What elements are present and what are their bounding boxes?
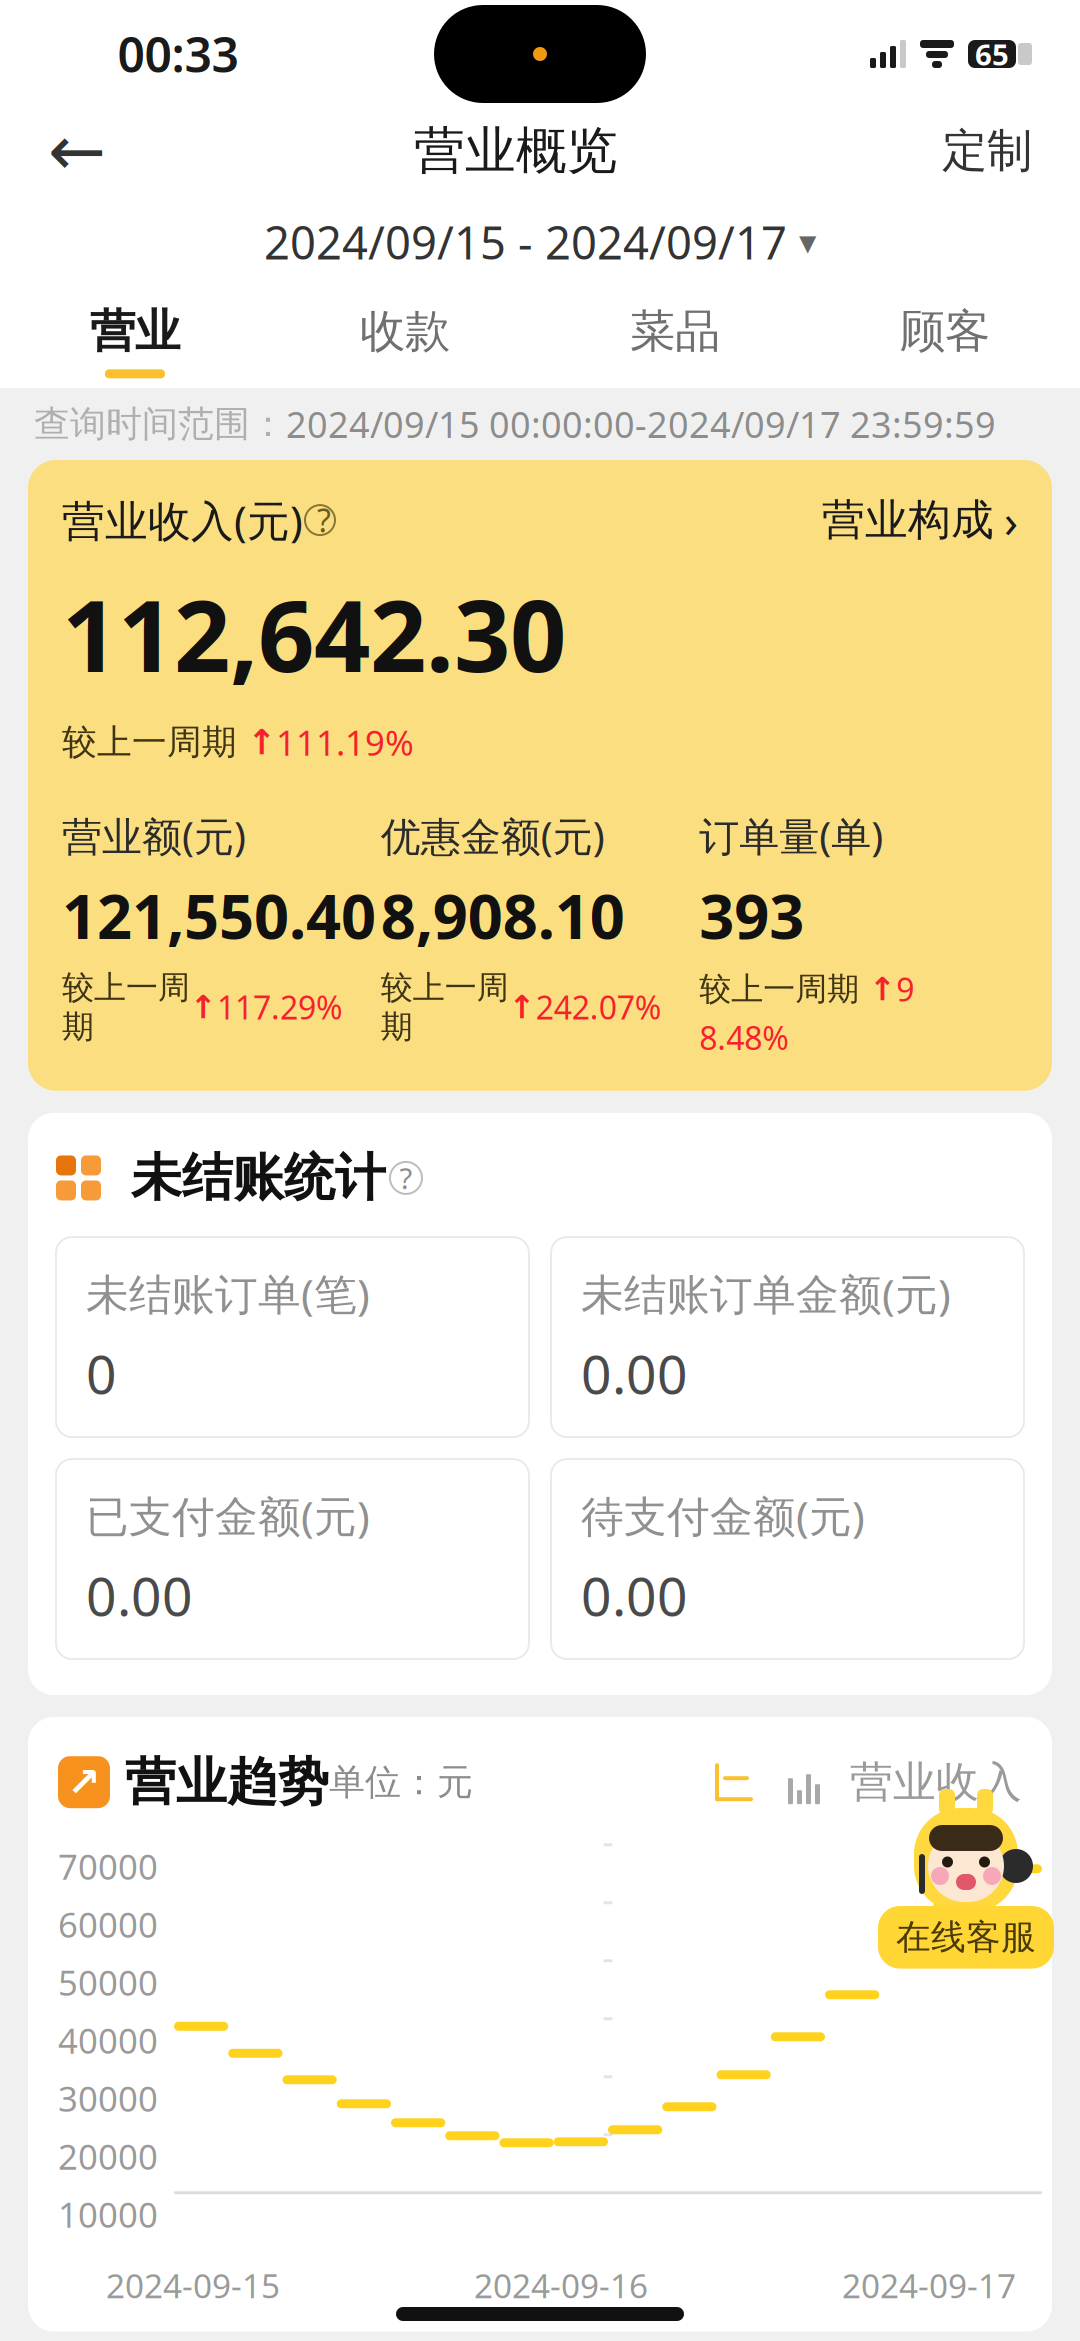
button[interactable]: 未结账订单金额(元)	[551, 1237, 1024, 1437]
staticText: ↑	[509, 989, 536, 1025]
staticText: 2024/09/15 - 2024/09/17	[264, 212, 787, 272]
staticText: ?	[399, 1158, 412, 1197]
staticText: 营业构成	[822, 494, 994, 546]
staticText: 50000	[58, 1959, 158, 2005]
staticText: 60000	[58, 1901, 158, 1947]
staticText: 242.07%	[536, 986, 662, 1028]
staticText: 订单量(单)	[699, 809, 883, 862]
staticText: 20000	[58, 2133, 158, 2179]
staticText: ▾	[799, 222, 816, 262]
button[interactable]: 菜品	[540, 290, 810, 388]
button[interactable]: 2024/09/15 - 2024/09/17	[0, 194, 1080, 290]
button[interactable]: 顾客	[810, 290, 1080, 388]
staticText: 营业	[90, 304, 180, 359]
staticText: 0.00	[581, 1338, 688, 1409]
staticText: 未结账订单金额(元)	[581, 1265, 951, 1322]
staticText: ?	[309, 499, 331, 541]
staticText: 2024-09-16	[474, 2263, 648, 2308]
button[interactable]: 收款	[270, 290, 540, 388]
staticText: ↗	[67, 1759, 101, 1805]
staticText: 00:33	[117, 22, 238, 86]
staticText: 112,642.30	[62, 568, 566, 699]
button[interactable]: 待支付金额(元)	[551, 1459, 1024, 1659]
staticText: 未结账统计	[101, 1147, 386, 1209]
staticText: 65	[975, 34, 1009, 73]
staticText: 较上一周期	[62, 721, 247, 764]
staticText: 121,550.40	[62, 874, 376, 956]
staticText: 营业额(元)	[62, 809, 246, 862]
staticText: ›	[1004, 490, 1018, 550]
staticText: 10000	[58, 2191, 158, 2237]
staticText: 在线客服	[896, 1916, 1036, 1959]
staticText: 待支付金额(元)	[581, 1487, 865, 1544]
staticText: 已支付金额(元)	[86, 1487, 370, 1544]
staticText: 定制	[942, 123, 1032, 179]
staticText: 营业收入	[850, 1756, 1022, 1808]
staticText: ↑	[190, 989, 217, 1025]
staticText: 40000	[58, 2017, 158, 2063]
staticText: 营业概览	[414, 120, 618, 182]
staticText: 营业收入(元)	[62, 492, 303, 548]
button[interactable]: 营业	[0, 290, 270, 388]
staticText: ←	[48, 112, 106, 190]
button[interactable]: 返回	[0, 111, 144, 191]
staticText: 30000	[58, 2075, 158, 2121]
staticText: 0.00	[581, 1560, 688, 1631]
staticText: 较上一周期	[381, 968, 509, 1046]
staticText: 2024-09-15	[106, 2263, 280, 2308]
staticText: 单位：元	[329, 1760, 473, 1804]
staticText: 9	[896, 968, 914, 1010]
staticText: 0	[86, 1338, 117, 1409]
staticText: 70000	[58, 1843, 158, 1889]
staticText: ↑	[869, 971, 896, 1007]
staticText: 顾客	[900, 304, 990, 359]
staticText: 菜品	[630, 304, 720, 359]
staticText: 117.29%	[217, 986, 343, 1028]
staticText: 较上一周期	[62, 968, 190, 1046]
button[interactable]: 定制	[888, 111, 1080, 191]
staticText: 0.00	[86, 1560, 193, 1631]
button[interactable]: 柱状图	[782, 1760, 826, 1804]
staticText: 营业趋势	[110, 1751, 329, 1813]
button[interactable]: 在线客服	[878, 1800, 1054, 1969]
staticText: 393	[699, 874, 804, 956]
staticText: 8,908.10	[381, 874, 625, 956]
button[interactable]: 已支付金额(元)	[56, 1459, 529, 1659]
staticText: 未结账订单(笔)	[86, 1265, 370, 1322]
staticText: 优惠金额(元)	[381, 809, 605, 862]
staticText: 查询时间范围：	[34, 402, 286, 446]
button[interactable]: 折线图	[712, 1760, 756, 1804]
staticText: 2024/09/15 00:00:00-2024/09/17 23:59:59	[286, 400, 996, 448]
staticText: 111.19%	[276, 719, 414, 765]
staticText: 2024-09-17	[842, 2263, 1016, 2308]
staticText: 较上一周期	[699, 969, 869, 1009]
staticText: ↑	[247, 723, 276, 762]
staticText: 收款	[360, 304, 450, 359]
button[interactable]: 营业构成	[822, 490, 1018, 550]
button[interactable]: 未结账订单(笔)	[56, 1237, 529, 1437]
staticText: 8.48%	[699, 1016, 789, 1059]
